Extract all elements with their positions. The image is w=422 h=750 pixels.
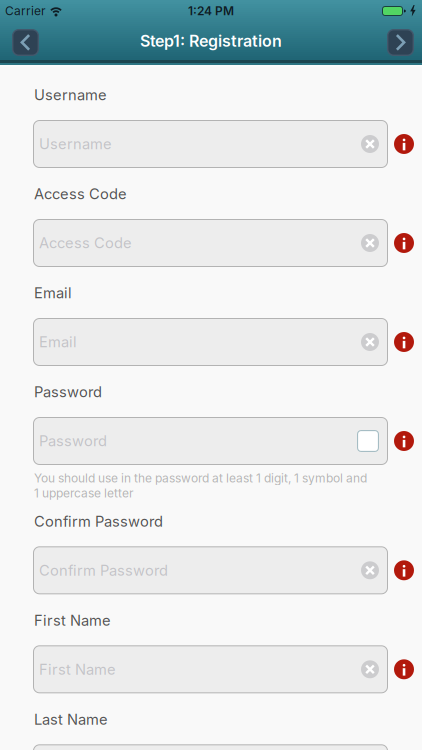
button[interactable]: Info (394, 431, 414, 451)
staticText: Carrier (5, 4, 46, 18)
button[interactable]: Clear text (361, 660, 379, 678)
button[interactable]: Show password (357, 430, 379, 452)
button[interactable]: Clear text (361, 333, 379, 351)
staticText: You should use in the password at least … (34, 471, 367, 485)
staticText: First Name (34, 612, 111, 629)
staticText: Email (39, 333, 77, 351)
button[interactable]: Next (387, 29, 414, 56)
button[interactable]: Info (394, 332, 414, 352)
staticText: Access Code (39, 234, 132, 252)
button[interactable]: Info (394, 659, 414, 679)
staticText: Step1: Registration (140, 32, 282, 50)
button[interactable]: Info (394, 134, 414, 154)
staticText: Password (34, 383, 102, 401)
button[interactable]: Clear text (361, 135, 379, 153)
staticText: First Name (39, 661, 116, 678)
button[interactable]: Clear text (361, 561, 379, 579)
button[interactable]: Info (394, 560, 414, 580)
staticText: Password (39, 432, 107, 450)
staticText: 1 uppercase letter (34, 486, 134, 500)
staticText: Email (34, 284, 72, 302)
staticText: Access Code (34, 185, 127, 203)
staticText: Last Name (34, 711, 108, 728)
staticText: Username (39, 135, 112, 153)
button[interactable]: Info (394, 233, 414, 253)
button[interactable]: Back (12, 29, 39, 56)
button[interactable]: Clear text (361, 234, 379, 252)
staticText: Confirm Password (39, 562, 168, 579)
staticText: Username (34, 86, 107, 104)
staticText: 1:24 PM (188, 4, 234, 18)
staticText: Confirm Password (34, 513, 163, 530)
